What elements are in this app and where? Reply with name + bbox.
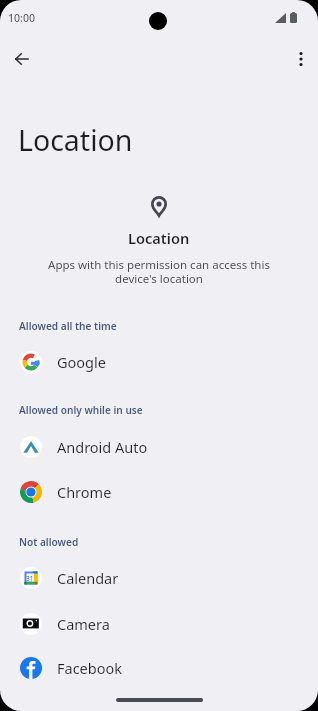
staticText: Allowed all the time <box>19 319 117 333</box>
staticText: Apps with this permission can access thi… <box>46 257 272 286</box>
staticText: Location <box>128 228 190 248</box>
button[interactable]: Back <box>5 43 37 75</box>
staticText: Not allowed <box>19 535 79 549</box>
staticText: Chrome <box>57 482 112 502</box>
button[interactable]: 31 <box>0 555 318 600</box>
staticText: Android Auto <box>57 437 148 457</box>
button[interactable]: Google <box>0 339 318 384</box>
staticText: Google <box>57 352 106 372</box>
staticText: 31 <box>26 574 34 583</box>
button[interactable]: Chrome <box>0 469 318 514</box>
button[interactable]: Android Auto <box>0 424 318 469</box>
button[interactable]: More options <box>285 43 317 75</box>
staticText: Allowed only while in use <box>19 403 143 417</box>
staticText: Location <box>18 121 133 160</box>
button[interactable]: Camera <box>0 601 318 646</box>
staticText: Facebook <box>57 658 123 678</box>
staticText: Camera <box>57 614 110 634</box>
staticText: 10:00 <box>8 11 36 25</box>
button[interactable]: Facebook <box>0 645 318 690</box>
staticText: Calendar <box>57 568 119 588</box>
